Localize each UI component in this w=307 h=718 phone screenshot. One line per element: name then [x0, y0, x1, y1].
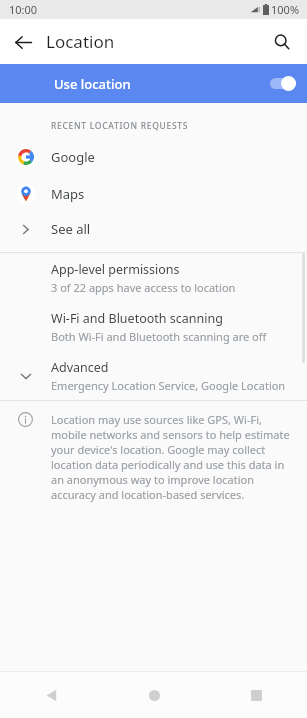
- button[interactable]: Search: [265, 25, 299, 59]
- button[interactable]: Recent apps: [205, 672, 307, 718]
- staticText: Location: [46, 30, 115, 53]
- button[interactable]: Google: [0, 138, 307, 175]
- button[interactable]: App-level permissions: [0, 253, 307, 302]
- staticText: 3 of 22 apps have access to location: [51, 280, 236, 295]
- staticText: Location may use sources like GPS, Wi-Fi…: [51, 412, 293, 502]
- button[interactable]: Back: [6, 25, 40, 59]
- button[interactable]: Home: [103, 672, 205, 718]
- staticText: See all: [51, 220, 91, 238]
- staticText: Wi-Fi and Bluetooth scanning: [51, 310, 223, 327]
- button[interactable]: Advanced: [0, 351, 307, 400]
- staticText: Both Wi-Fi and Bluetooth scanning are of…: [51, 329, 267, 344]
- staticText: Google: [51, 148, 95, 166]
- staticText: Advanced: [51, 359, 109, 376]
- button[interactable]: Use location: [0, 64, 307, 103]
- staticText: App-level permissions: [51, 261, 180, 278]
- staticText: Use location: [54, 75, 131, 93]
- staticText: Maps: [51, 185, 85, 203]
- staticText: RECENT LOCATION REQUESTS: [51, 120, 189, 132]
- button[interactable]: Wi-Fi and Bluetooth scanning: [0, 302, 307, 351]
- button[interactable]: See all: [0, 212, 307, 246]
- staticText: Emergency Location Service, Google Locat…: [51, 378, 299, 393]
- staticText: 10:00: [9, 2, 38, 17]
- button[interactable]: Back: [0, 672, 103, 718]
- button[interactable]: Maps: [0, 175, 307, 212]
- staticText: 100%: [271, 2, 300, 17]
